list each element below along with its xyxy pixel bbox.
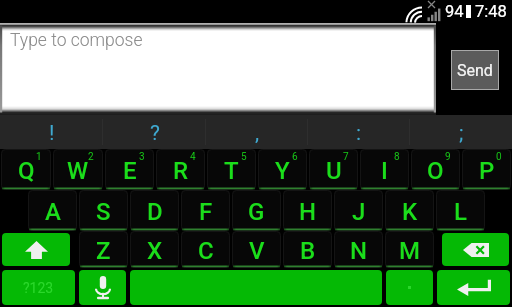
button[interactable]: , bbox=[206, 115, 308, 149]
button[interactable]: J bbox=[334, 190, 383, 231]
staticText: D bbox=[147, 198, 163, 226]
staticText: 1 bbox=[36, 151, 42, 163]
button[interactable]: M bbox=[385, 231, 434, 268]
button[interactable]: V bbox=[232, 231, 281, 268]
staticText: 6 bbox=[292, 151, 298, 163]
button[interactable]: N bbox=[334, 231, 383, 268]
staticText: M bbox=[399, 237, 420, 265]
staticText: Type to compose bbox=[10, 30, 143, 51]
staticText: T bbox=[224, 157, 239, 185]
button[interactable]: E bbox=[105, 149, 154, 190]
staticText: J bbox=[352, 198, 366, 226]
button[interactable]: I bbox=[360, 149, 409, 190]
staticText: V bbox=[249, 237, 265, 265]
staticText: G bbox=[248, 198, 265, 226]
staticText: E bbox=[123, 157, 137, 185]
staticText: Z bbox=[96, 237, 111, 265]
button[interactable]: U bbox=[309, 149, 358, 190]
staticText: : bbox=[356, 121, 362, 146]
staticText: W bbox=[67, 157, 89, 185]
staticText: Q bbox=[18, 157, 35, 185]
button[interactable]: Voice input bbox=[79, 270, 126, 305]
button[interactable]: D bbox=[130, 190, 179, 231]
button[interactable]: B bbox=[283, 231, 332, 268]
button[interactable]: T bbox=[207, 149, 256, 190]
button[interactable]: H bbox=[283, 190, 332, 231]
button[interactable]: Symbols bbox=[2, 270, 75, 305]
button[interactable]: R bbox=[156, 149, 205, 190]
staticText: O bbox=[427, 157, 444, 185]
staticText: K bbox=[402, 198, 418, 226]
staticText: R bbox=[173, 157, 189, 185]
staticText: L bbox=[454, 198, 467, 226]
staticText: X bbox=[147, 237, 163, 265]
button[interactable]: A bbox=[28, 190, 77, 231]
button[interactable]: ; bbox=[410, 115, 512, 149]
button[interactable]: Backspace bbox=[442, 233, 509, 266]
button[interactable]: Type to compose bbox=[0, 23, 436, 115]
staticText: 94 bbox=[445, 2, 464, 21]
button[interactable]: L bbox=[436, 190, 485, 231]
staticText: N bbox=[350, 237, 368, 265]
staticText: F bbox=[199, 198, 213, 226]
staticText: 3 bbox=[139, 151, 145, 163]
button[interactable]: F bbox=[181, 190, 230, 231]
staticText: 0 bbox=[496, 151, 502, 163]
button[interactable]: K bbox=[385, 190, 434, 231]
button[interactable]: P bbox=[462, 149, 511, 190]
button[interactable]: Send bbox=[452, 51, 498, 89]
button[interactable]: Shift bbox=[2, 233, 70, 266]
button[interactable]: W bbox=[53, 149, 103, 190]
staticText: C bbox=[198, 237, 214, 265]
button[interactable]: ! bbox=[0, 115, 103, 149]
staticText: 8 bbox=[394, 151, 400, 163]
staticText: ; bbox=[459, 121, 464, 146]
staticText: H bbox=[299, 198, 317, 226]
staticText: 7:48 bbox=[475, 2, 507, 21]
button[interactable]: C bbox=[181, 231, 230, 268]
button[interactable]: ? bbox=[103, 115, 206, 149]
button[interactable]: Space bbox=[130, 270, 382, 305]
button[interactable]: Enter bbox=[437, 270, 510, 305]
staticText: B bbox=[300, 237, 316, 265]
staticText: ?123 bbox=[23, 280, 54, 296]
staticText: , bbox=[255, 121, 260, 146]
button[interactable]: Z bbox=[79, 231, 128, 268]
staticText: 7 bbox=[343, 151, 349, 163]
staticText: 2 bbox=[88, 151, 94, 163]
button[interactable]: S bbox=[79, 190, 128, 231]
staticText: I bbox=[381, 157, 388, 185]
staticText: 9 bbox=[445, 151, 451, 163]
staticText: Send bbox=[457, 61, 493, 80]
staticText: ? bbox=[150, 121, 160, 146]
button[interactable]: Period bbox=[386, 270, 433, 305]
staticText: S bbox=[96, 198, 111, 226]
button[interactable]: Y bbox=[258, 149, 307, 190]
staticText: P bbox=[479, 157, 495, 185]
staticText: A bbox=[45, 198, 61, 226]
button[interactable]: O bbox=[411, 149, 460, 190]
button[interactable]: Q bbox=[1, 149, 51, 190]
staticText: Y bbox=[275, 157, 290, 185]
staticText: ! bbox=[49, 121, 55, 146]
button[interactable]: X bbox=[130, 231, 179, 268]
staticText: U bbox=[326, 157, 342, 185]
staticText: 4 bbox=[190, 151, 196, 163]
button[interactable]: : bbox=[308, 115, 410, 149]
staticText: 5 bbox=[241, 151, 247, 163]
button[interactable]: G bbox=[232, 190, 281, 231]
